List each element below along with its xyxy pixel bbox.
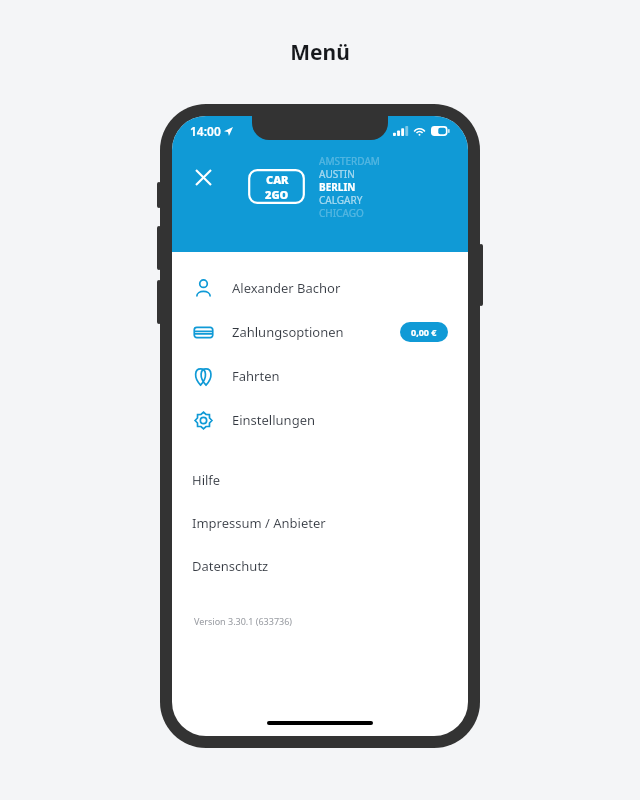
staticText: 0,00 € <box>411 326 437 338</box>
staticText: 2GO <box>265 187 289 202</box>
staticText: CAR <box>266 172 289 187</box>
staticText: CALGARY <box>319 193 363 206</box>
staticText: Fahrten <box>232 367 280 385</box>
staticText: AUSTIN <box>319 167 355 180</box>
staticText: Zahlungsoptionen <box>232 323 344 341</box>
button[interactable]: Alexander Bachor <box>172 266 468 310</box>
staticText: Hilfe <box>192 471 221 489</box>
staticText: CHICAGO <box>319 206 364 219</box>
button[interactable]: Einstellungen <box>172 398 468 442</box>
button[interactable]: Impressum / Anbieter <box>172 501 468 544</box>
staticText: Alexander Bachor <box>232 279 341 297</box>
staticText: Einstellungen <box>232 411 316 429</box>
button[interactable]: Datenschutz <box>172 544 468 587</box>
staticText: Impressum / Anbieter <box>192 514 326 532</box>
button[interactable]: Hilfe <box>172 458 468 501</box>
button[interactable]: Fahrten <box>172 354 468 398</box>
button[interactable]: Zahlungsoptionen <box>172 310 468 354</box>
button[interactable]: Schließen <box>186 160 220 194</box>
staticText: Menü <box>290 38 350 67</box>
staticText: 14:00 <box>190 123 221 139</box>
staticText: Datenschutz <box>192 557 269 575</box>
staticText: Version 3.30.1 (633736) <box>194 615 293 627</box>
staticText: BERLIN <box>319 180 356 193</box>
staticText: AMSTERDAM <box>319 154 380 167</box>
